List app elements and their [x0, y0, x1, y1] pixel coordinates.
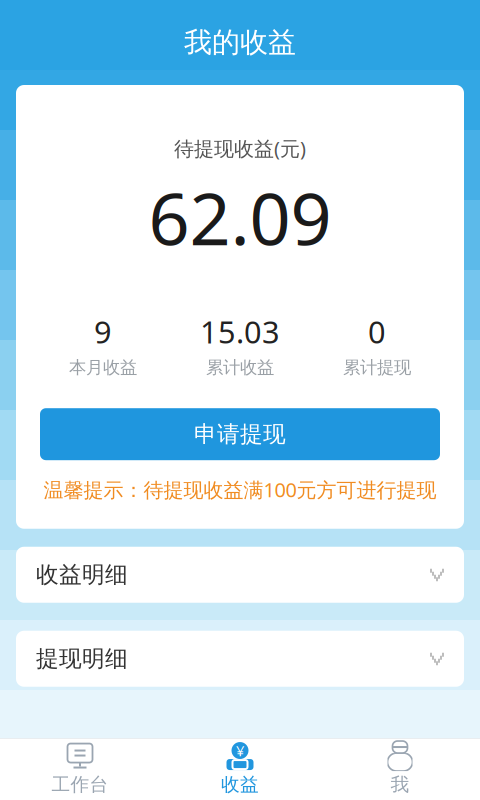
staticText: 提现明细 [36, 645, 128, 673]
staticText: 收益明细 [36, 561, 128, 589]
staticText: 9 [94, 311, 112, 352]
button[interactable]: 我 [320, 739, 480, 800]
staticText: 我的收益 [184, 25, 296, 60]
staticText: 62.09 [148, 170, 331, 265]
button[interactable]: 申请提现 [40, 408, 440, 460]
staticText: 本月收益 [69, 357, 137, 378]
staticText: 收益 [221, 773, 259, 796]
staticText: 累计提现 [343, 357, 411, 378]
staticText: 温馨提示：待提现收益满100元方可进行提现 [43, 476, 436, 503]
staticText: 申请提现 [194, 420, 286, 448]
button[interactable]: 收益明细 [16, 547, 464, 603]
staticText: 0 [368, 311, 386, 352]
staticText: ¥ [236, 741, 244, 760]
button[interactable]: ¥ [160, 739, 320, 800]
staticText: 我 [390, 773, 409, 796]
button[interactable]: 提现明细 [16, 631, 464, 687]
staticText: 待提现收益(元) [174, 135, 306, 162]
button[interactable]: 工作台 [0, 739, 160, 800]
staticText: 15.03 [200, 311, 280, 352]
staticText: 工作台 [51, 773, 108, 796]
staticText: 累计收益 [206, 357, 274, 378]
